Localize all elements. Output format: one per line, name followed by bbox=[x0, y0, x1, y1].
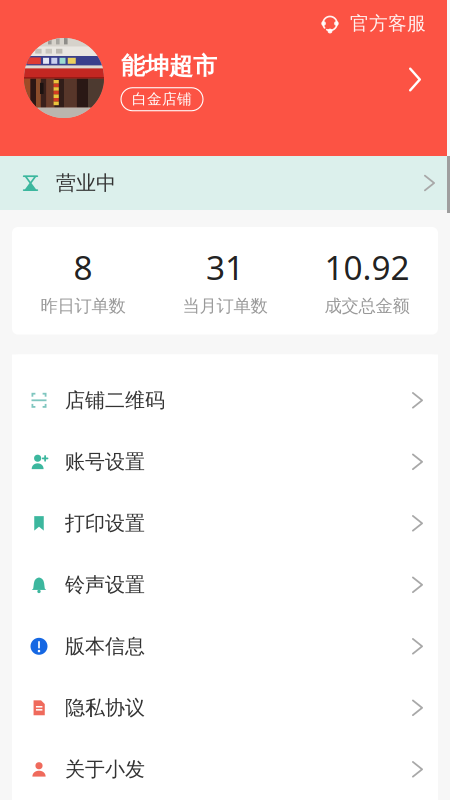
staticText: 昨日订单数 bbox=[40, 295, 125, 317]
staticText: 营业中 bbox=[56, 171, 116, 195]
staticText: 铃声设置 bbox=[65, 572, 145, 597]
button[interactable]: 店铺二维码 bbox=[12, 370, 438, 431]
staticText: 31 bbox=[206, 245, 244, 289]
button[interactable]: 关于小发 bbox=[12, 739, 438, 800]
staticText: 能坤超市 bbox=[121, 51, 217, 81]
staticText: 成交总金额 bbox=[324, 295, 409, 317]
staticText: 当月订单数 bbox=[182, 295, 267, 317]
button[interactable]: 打印设置 bbox=[12, 493, 438, 554]
staticText: 隐私协议 bbox=[65, 695, 145, 720]
staticText: 账号设置 bbox=[65, 449, 145, 474]
staticText: 关于小发 bbox=[65, 757, 145, 782]
staticText: 10.92 bbox=[324, 245, 409, 289]
staticText: 店铺二维码 bbox=[65, 388, 165, 413]
button[interactable]: 隐私协议 bbox=[12, 677, 438, 739]
staticText: 打印设置 bbox=[65, 511, 145, 536]
button[interactable]: 铃声设置 bbox=[12, 554, 438, 616]
staticText: 8 bbox=[73, 245, 92, 289]
button[interactable]: 能坤超市 bbox=[0, 0, 450, 118]
button[interactable]: 账号设置 bbox=[12, 431, 438, 493]
button[interactable]: 版本信息 bbox=[12, 616, 438, 677]
staticText: 白金店铺 bbox=[132, 90, 192, 108]
button[interactable]: 营业中 bbox=[0, 156, 450, 210]
staticText: 版本信息 bbox=[65, 634, 145, 659]
button[interactable]: 官方客服 bbox=[310, 0, 450, 43]
staticText: 官方客服 bbox=[350, 12, 426, 35]
